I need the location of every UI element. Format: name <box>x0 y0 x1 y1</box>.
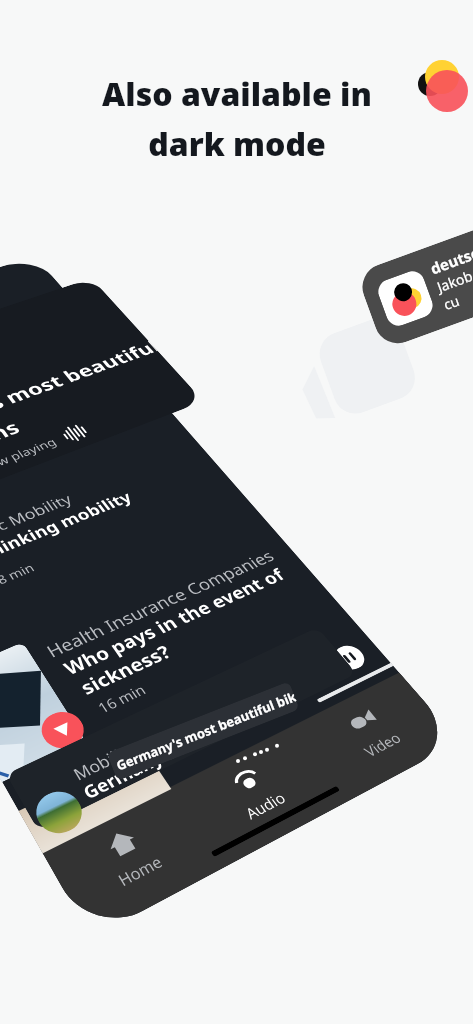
staticText: Rethinking mobility <box>0 487 136 573</box>
staticText: Audio <box>241 787 290 824</box>
staticText: 16 min <box>94 680 150 717</box>
staticText: Electric Mobility <box>0 490 77 554</box>
staticText: Germany's most beautiful bike paths <box>114 688 298 774</box>
button[interactable]: Germany's most beautiful <box>0 278 204 518</box>
staticText: deutsch <box>427 239 473 278</box>
button[interactable]: Health Insurance Companies <box>37 532 352 737</box>
button[interactable]: Electric Mobility <box>0 430 246 606</box>
staticText: Germany's most beautiful <box>78 683 299 805</box>
button[interactable]: Play <box>34 706 91 755</box>
button[interactable]: Pause <box>329 641 370 674</box>
staticText: Germany's most beautiful <box>0 337 161 453</box>
staticText: Who pays in the event of <box>59 563 290 681</box>
staticText: Video <box>360 728 406 761</box>
button[interactable]: deutsch <box>356 208 473 350</box>
staticText: Mobility <box>69 738 140 785</box>
button[interactable]: Mobility <box>6 627 357 831</box>
staticText: sickness? <box>75 640 176 700</box>
button[interactable]: Germany's most beautiful bike paths <box>106 681 300 781</box>
staticText: bike paths <box>0 415 24 480</box>
staticText: Jakob <box>434 266 473 296</box>
staticText: Also available in <box>102 72 372 116</box>
staticText: 8 min <box>0 559 38 588</box>
button[interactable]: Video <box>297 682 444 783</box>
staticText: Health Insurance Companies <box>42 545 280 663</box>
staticText: cu <box>441 291 462 314</box>
button[interactable]: Audio <box>178 738 332 847</box>
staticText: dark mode <box>148 122 326 166</box>
staticText: Now playing <box>0 435 60 475</box>
button[interactable]: Home <box>49 799 210 916</box>
staticText: Home <box>114 851 166 891</box>
